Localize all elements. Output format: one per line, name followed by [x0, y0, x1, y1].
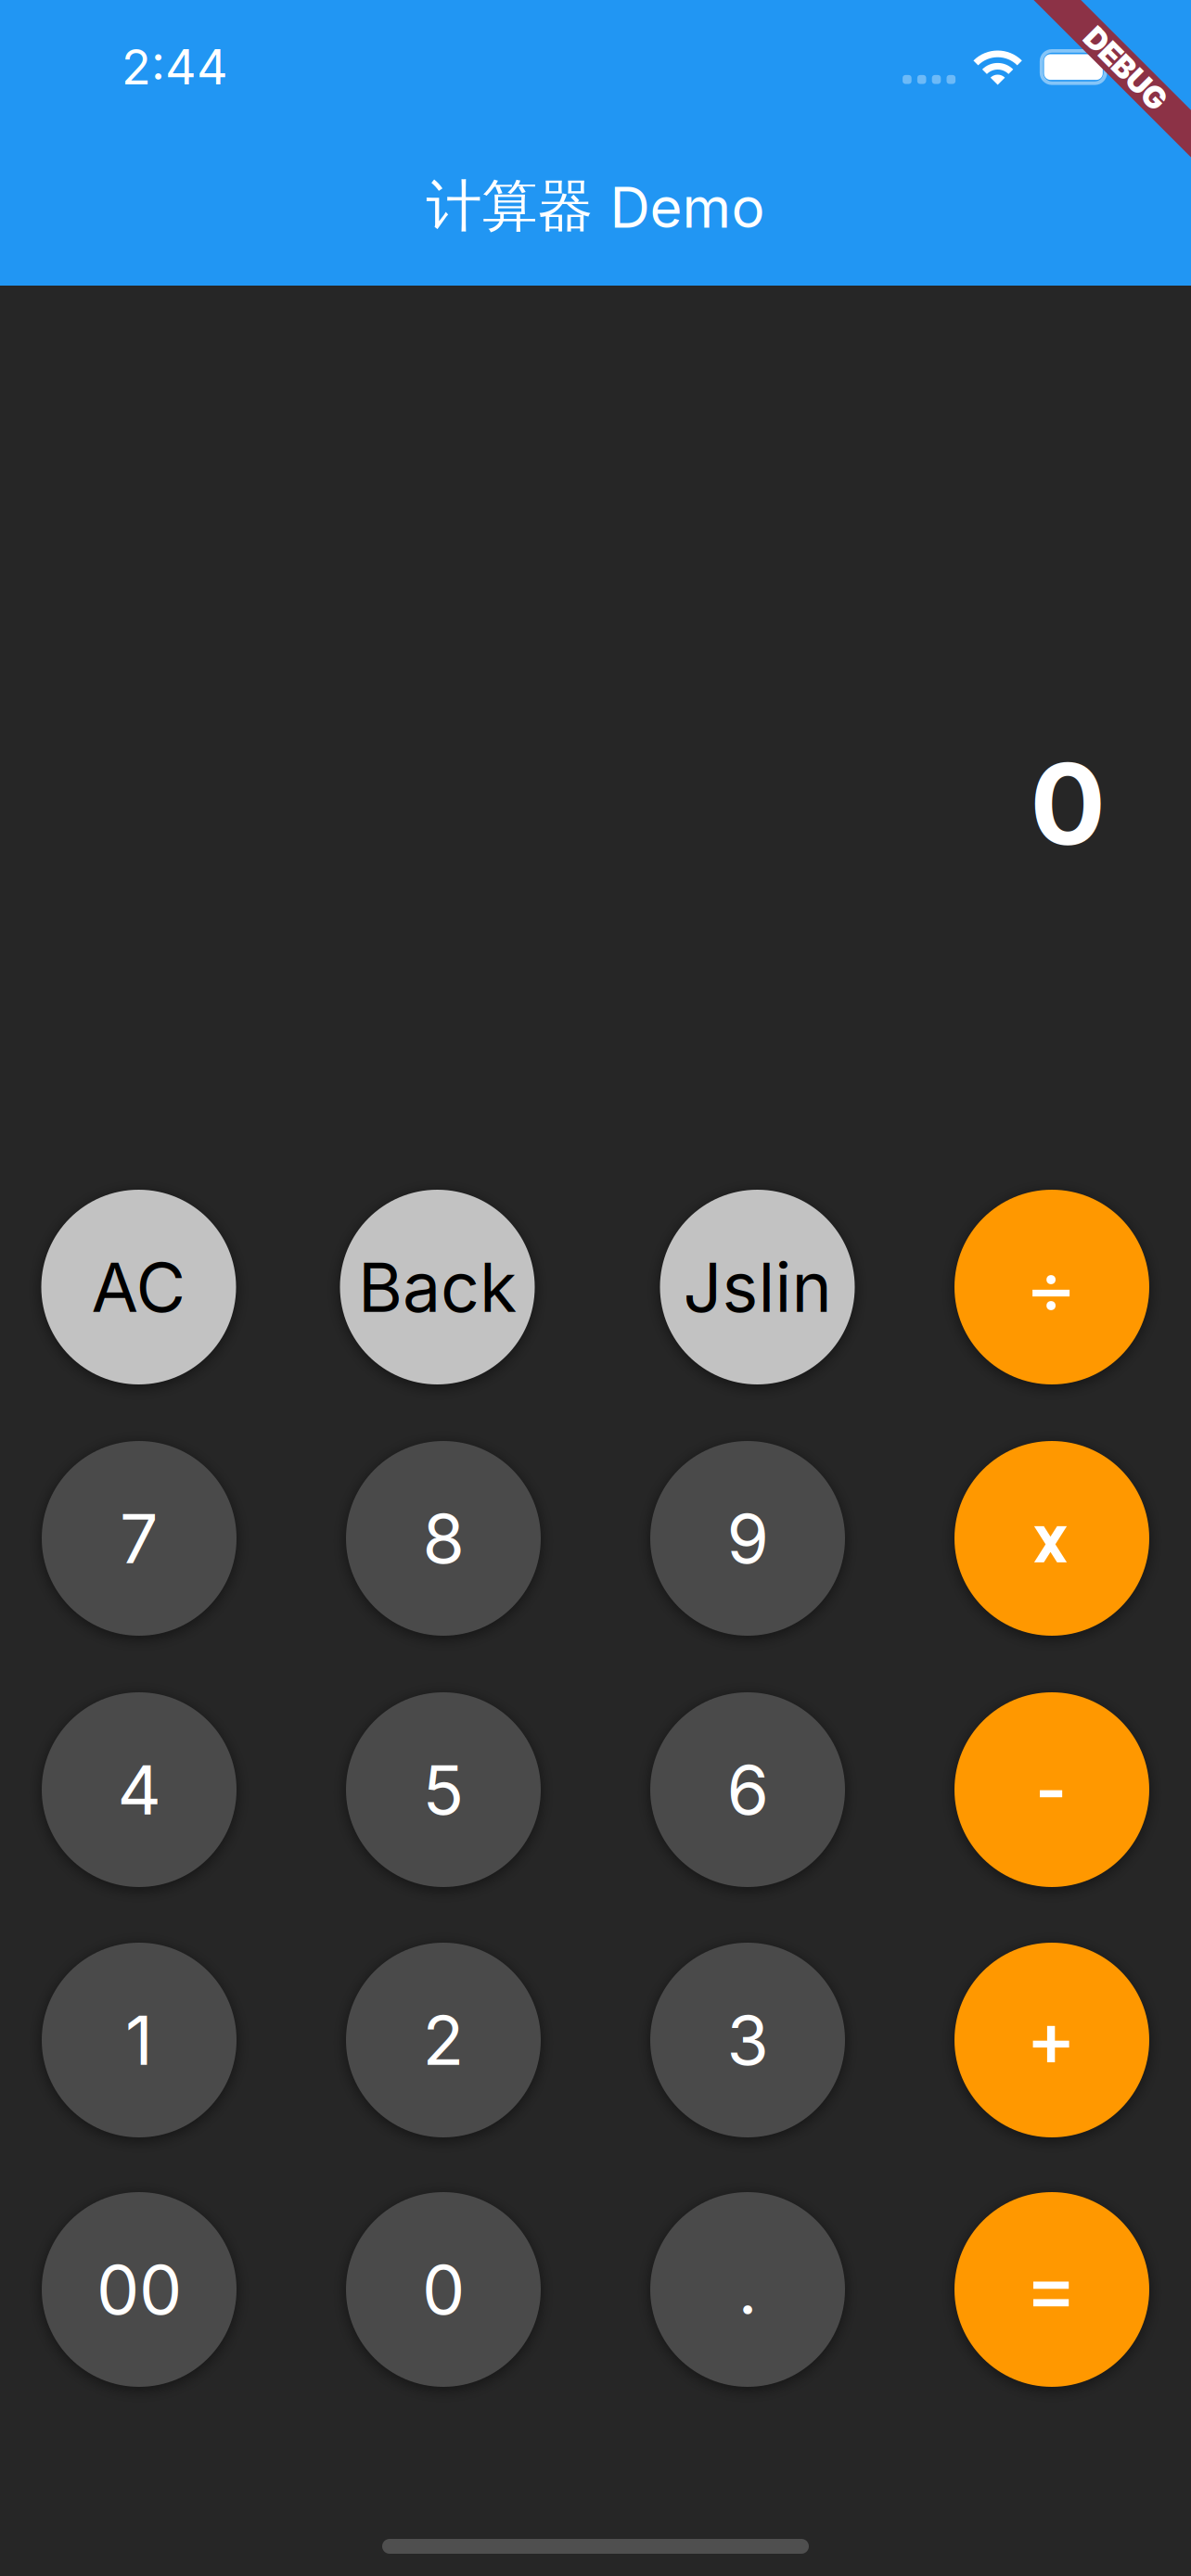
- button[interactable]: Subtract: [954, 1692, 1149, 1887]
- button[interactable]: 2: [346, 1943, 541, 2137]
- staticText: 00: [96, 2248, 182, 2331]
- button[interactable]: 9: [650, 1441, 845, 1636]
- button[interactable]: 3: [650, 1943, 845, 2137]
- staticText: 0: [1030, 735, 1106, 872]
- staticText: 5: [423, 1748, 464, 1831]
- button[interactable]: Add: [954, 1943, 1149, 2137]
- staticText: 0: [422, 2248, 465, 2331]
- staticText: Back: [358, 1246, 517, 1328]
- button[interactable]: Back: [340, 1190, 535, 1384]
- button[interactable]: AC: [41, 1190, 236, 1384]
- button[interactable]: 6: [650, 1692, 845, 1887]
- button[interactable]: 00: [42, 2192, 237, 2387]
- button[interactable]: 8: [346, 1441, 541, 1636]
- button[interactable]: 0: [346, 2192, 541, 2387]
- staticText: 2:44: [122, 38, 228, 96]
- staticText: 3: [727, 1999, 768, 2081]
- staticText: .: [738, 2248, 757, 2331]
- staticText: 1: [125, 1999, 153, 2081]
- staticText: 计算器 Demo: [426, 171, 765, 241]
- staticText: Jslin: [683, 1246, 832, 1328]
- button[interactable]: Multiply: [954, 1441, 1149, 1636]
- staticText: 9: [727, 1497, 768, 1579]
- staticText: 6: [727, 1748, 768, 1831]
- button[interactable]: Jslin: [660, 1190, 855, 1384]
- staticText: 4: [117, 1748, 161, 1831]
- staticText: 7: [120, 1497, 159, 1579]
- button[interactable]: 1: [42, 1943, 237, 2137]
- button[interactable]: Divide: [954, 1190, 1149, 1384]
- button[interactable]: .: [650, 2192, 845, 2387]
- staticText: 2: [423, 1999, 464, 2081]
- staticText: 8: [423, 1497, 464, 1579]
- staticText: AC: [91, 1246, 186, 1328]
- button[interactable]: 7: [42, 1441, 237, 1636]
- button[interactable]: 4: [42, 1692, 237, 1887]
- staticText: DEBUG: [1074, 48, 1177, 85]
- button[interactable]: 5: [346, 1692, 541, 1887]
- button[interactable]: Equals: [954, 2192, 1149, 2387]
